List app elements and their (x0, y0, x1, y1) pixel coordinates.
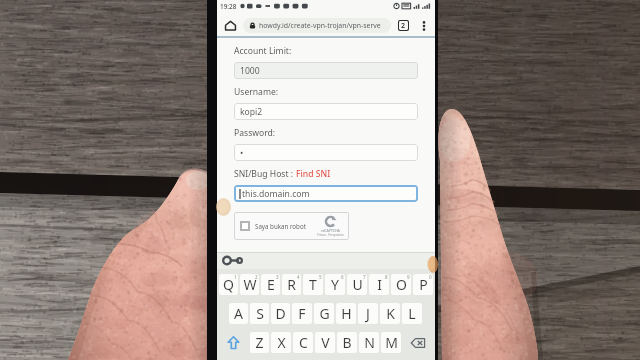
button[interactable]: U (347, 274, 367, 295)
staticText: Password: (234, 127, 276, 139)
button[interactable]: N (359, 332, 379, 353)
staticText: this.domain.com (242, 188, 310, 200)
button[interactable]: V (315, 332, 335, 353)
button[interactable]: I (369, 274, 389, 295)
button[interactable]: Saya bukan robot (234, 212, 349, 240)
button[interactable]: J (358, 303, 378, 324)
staticText: X (277, 333, 286, 352)
button[interactable]: X (271, 332, 291, 353)
button[interactable]: More options (413, 13, 435, 38)
button[interactable]: S (250, 303, 269, 324)
button[interactable]: Find SNI (296, 168, 331, 180)
staticText: Username: (234, 86, 279, 98)
staticText: • (240, 147, 244, 159)
staticText: 5 (319, 274, 322, 280)
staticText: Find SNI (296, 168, 331, 180)
button[interactable]: L (402, 303, 422, 324)
button[interactable]: Q (219, 274, 238, 295)
staticText: Q (223, 275, 234, 294)
staticText: Z (255, 333, 264, 352)
staticText: 2 (401, 21, 406, 30)
button[interactable]: K (380, 303, 400, 324)
staticText: Y (331, 275, 339, 294)
staticText: SNI/Bug Host : (234, 168, 296, 180)
staticText: O (396, 275, 407, 294)
button[interactable]: H (336, 303, 356, 324)
button[interactable]: F (292, 303, 312, 324)
button[interactable]: E (261, 274, 280, 295)
staticText: G (319, 304, 330, 323)
button[interactable]: A (229, 303, 248, 324)
staticText: Privasi - Persyaratan (317, 233, 344, 237)
button[interactable]: M (381, 332, 401, 353)
button[interactable]: • (234, 144, 418, 161)
button[interactable]: kopi2 (234, 103, 418, 120)
staticText: H (341, 304, 352, 323)
button[interactable]: howdy.id/create-vpn-trojan/vpn-serve (243, 18, 391, 33)
staticText: A (234, 304, 243, 323)
button[interactable]: this.domain.com (234, 185, 418, 202)
button[interactable]: Backspace (402, 332, 434, 353)
staticText: 1000 (240, 65, 260, 77)
staticText: I (377, 275, 382, 294)
staticText: 4 (297, 274, 300, 280)
staticText: 8 (385, 274, 388, 280)
button[interactable]: C (293, 332, 313, 353)
button[interactable]: Home (217, 13, 243, 38)
staticText: V (321, 333, 330, 352)
button[interactable]: Shift (218, 332, 249, 353)
button[interactable]: G (314, 303, 334, 324)
button[interactable]: Z (250, 332, 269, 353)
staticText: 2 (255, 274, 258, 280)
staticText: 9 (407, 274, 410, 280)
staticText: 19:28 (220, 2, 237, 11)
staticText: S (256, 304, 264, 323)
staticText: P (419, 275, 428, 294)
button[interactable]: O (391, 274, 411, 295)
staticText: Saya bukan robot (255, 222, 306, 230)
staticText: L (408, 304, 416, 323)
button[interactable]: B (337, 332, 357, 353)
button[interactable]: W (240, 274, 259, 295)
staticText: Account Limit: (234, 45, 292, 57)
staticText: B (342, 333, 352, 352)
staticText: 0 (429, 274, 432, 280)
staticText: C (299, 333, 308, 352)
staticText: N (364, 333, 375, 352)
staticText: kopi2 (240, 106, 263, 118)
staticText: 7 (363, 274, 366, 280)
button[interactable]: P (413, 274, 433, 295)
staticText: J (366, 304, 370, 323)
staticText: 6 (341, 274, 344, 280)
staticText: W (243, 275, 257, 294)
staticText: U (352, 275, 363, 294)
button[interactable]: Y (325, 274, 345, 295)
staticText: 3 (276, 274, 279, 280)
staticText: 1 (234, 274, 237, 280)
button[interactable]: 1000 (234, 62, 418, 79)
staticText: D (275, 304, 286, 323)
button[interactable]: T (303, 274, 323, 295)
staticText: K (386, 304, 395, 323)
staticText: M (385, 333, 398, 352)
button[interactable]: D (271, 303, 290, 324)
staticText: T (309, 275, 317, 294)
staticText: reCAPTCHA (321, 228, 340, 233)
button[interactable]: Tabs (393, 13, 413, 38)
staticText: R (287, 275, 296, 294)
staticText: F (298, 304, 306, 323)
staticText: E (267, 275, 275, 294)
button[interactable]: R (282, 274, 301, 295)
staticText: howdy.id/create-vpn-trojan/vpn-serve (259, 21, 381, 30)
